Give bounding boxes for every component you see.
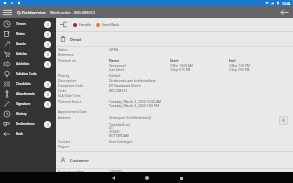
button[interactable]: Send Back [96,22,120,27]
staticText: WO-008312 [109,88,128,93]
staticText: 10:44 [282,1,291,5]
staticText: Articles [16,52,27,56]
staticText: Description [58,78,76,83]
button[interactable]: History [0,109,56,119]
button[interactable]: Status [56,47,293,52]
button[interactable]: Declarations [0,119,56,129]
staticText: Kees Verhagen [109,139,133,144]
button[interactable]: Priority [56,73,293,78]
staticText: 0 [47,32,49,37]
button[interactable]: Detail [56,32,293,46]
button[interactable]: Handle [73,22,91,27]
staticText: Account number [58,169,85,172]
staticText: Planned Hours [58,99,82,104]
staticText: Yannoussef Jose Sahid [109,64,126,72]
button[interactable]: Open navigation menu [0,6,15,18]
staticText: Notes [16,32,25,36]
button[interactable]: Account number [56,169,293,172]
button[interactable]: Appointment Date [56,109,293,114]
staticText: Name [109,58,120,63]
button[interactable]: Show on map [280,117,287,124]
button[interactable]: Recent apps [170,173,192,183]
staticText: SLA Date Time [58,93,81,98]
staticText: Code [58,88,67,93]
staticText: Declarations [16,122,35,126]
staticText: 1300970 [109,169,123,172]
staticText: 0 [47,62,49,67]
button[interactable]: Timers [0,19,56,29]
staticText: Address [58,115,71,120]
button[interactable]: Activities [0,59,56,69]
button[interactable]: Back [276,6,292,18]
button[interactable]: Workflow [59,20,68,29]
staticText: Checklists [16,82,31,86]
staticText: DF Standaard Klacht [109,83,141,88]
staticText: Start [170,58,179,63]
staticText: 3 Mar 10:00 AM 3 Sep 6:15 PM [170,64,193,72]
staticText: 0 [47,42,49,47]
staticText: Status [58,47,68,52]
button[interactable]: Home [136,173,158,183]
button[interactable]: Assets [0,39,56,49]
staticText: Work order - WO-008312 [50,10,96,15]
button[interactable]: Articles [0,49,56,59]
staticText: Contact [58,139,71,144]
button[interactable]: Notes [0,29,56,39]
staticText: Appointment Date [58,109,87,114]
button[interactable]: Attachments [0,89,56,99]
staticText: Solution Code [16,72,37,76]
button[interactable]: Code [56,88,293,93]
staticText: Signature [16,102,31,106]
button[interactable]: Back [0,129,56,139]
staticText: Planned on [58,58,76,63]
button[interactable]: Complaint Code [56,83,293,88]
staticText: Assets [16,42,26,46]
button[interactable]: Planned on [56,57,293,73]
staticText: History [16,112,27,116]
staticText: Detail [70,37,82,42]
button[interactable]: Customer [56,152,293,168]
staticText: Project [58,144,69,149]
staticText: Send Back [102,22,120,27]
staticText: 3 Mar 1:00 PM 3 Sep 7:00 PM [229,64,250,72]
staticText: Priority [58,73,70,78]
staticText: 0 [47,92,49,97]
staticText: Reference [58,52,74,57]
button[interactable]: Contact [56,139,293,144]
staticText: 0 [47,102,49,107]
staticText: End [229,58,236,63]
button[interactable]: Planned Hours [56,98,293,109]
staticText: Tuesday, March 3, 2020 10:00 AM Tuesday,… [109,99,162,108]
staticText: OPEN [109,47,119,52]
staticText: Timers [16,22,27,26]
staticText: 0 [47,82,49,87]
button[interactable]: Solution Code [0,69,56,79]
staticText: 0 [47,22,49,27]
button[interactable]: Project [56,144,293,149]
button[interactable]: Signature [0,99,56,109]
button[interactable]: Back [102,173,124,183]
button[interactable]: Reference [56,52,293,57]
button[interactable]: Checklists [0,79,56,89]
staticText: Attachments [16,92,35,96]
staticText: Customer [70,158,89,163]
staticText: 0 [47,52,49,57]
staticText: Q-Fieldservice [17,9,46,15]
button[interactable]: Address [56,114,293,139]
button[interactable]: SLA Date Time [56,93,293,98]
staticText: Complaint Code [58,83,84,88]
staticText: Verhuijzen Schildersbedrijf [109,115,151,120]
staticText: Default [109,73,121,78]
staticText: Activities [16,62,30,66]
staticText: 0 [47,122,49,127]
staticText: Back [16,132,24,136]
staticText: Handle [79,22,91,27]
staticText: Tinnebuilt sul 41 3CH00 ROTTERDAM [109,122,131,138]
staticText: Onderzoek aan koelinstallatie [109,78,156,83]
button[interactable]: Description [56,78,293,83]
